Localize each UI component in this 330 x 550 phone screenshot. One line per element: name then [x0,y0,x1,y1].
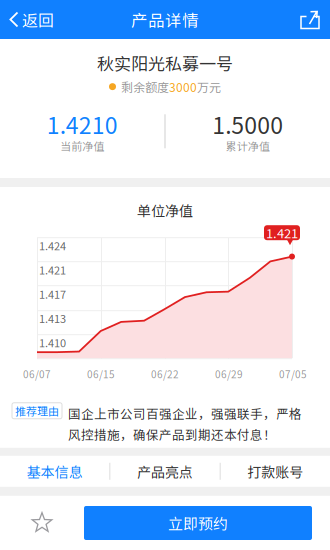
staticText: 剩余额度 [121,80,169,94]
staticText: 06/22 [151,368,179,380]
staticText: 当前净值 [60,139,104,152]
staticText: 1.424 [39,239,66,252]
staticText: 产品亮点 [137,463,193,479]
staticText: 07/05 [279,368,307,380]
button[interactable]: 打款账号 [221,456,330,487]
staticText: 06/29 [215,368,243,380]
staticText: 1.413 [39,312,66,324]
staticText: 打款账号 [247,463,303,479]
staticText: 累计净值 [226,139,270,152]
staticText: 万元 [197,80,221,94]
staticText: 秋实阳光私募一号 [97,53,233,73]
staticText: 产品详情 [131,10,199,29]
button[interactable]: 产品亮点 [110,456,220,487]
staticText: 3000 [169,80,197,94]
staticText: 立即预约 [168,514,228,532]
button[interactable]: 基本信息 [0,456,109,487]
staticText: 国企上市公司百强企业，强强联手，严格风控措施，确保产品到期还本付息！ [68,403,302,445]
staticText: 推荐理由 [15,404,59,417]
button[interactable]: 立即预约 [84,506,312,540]
button[interactable]: 收藏 [0,496,84,550]
staticText: 1.410 [39,336,66,349]
staticText: 1.421 [266,225,298,240]
staticText: 06/07 [23,368,51,380]
staticText: 1.421 [39,263,66,276]
staticText: 1.5000 [212,111,283,137]
staticText: 06/15 [87,368,115,380]
staticText: 1.417 [39,288,66,300]
staticText: 1.4210 [47,111,118,137]
button[interactable]: 返回 [0,0,64,39]
staticText: 单位净值 [137,202,193,218]
staticText: 返回 [22,10,54,29]
button[interactable]: 分享 [300,0,330,39]
staticText: 基本信息 [27,463,83,479]
